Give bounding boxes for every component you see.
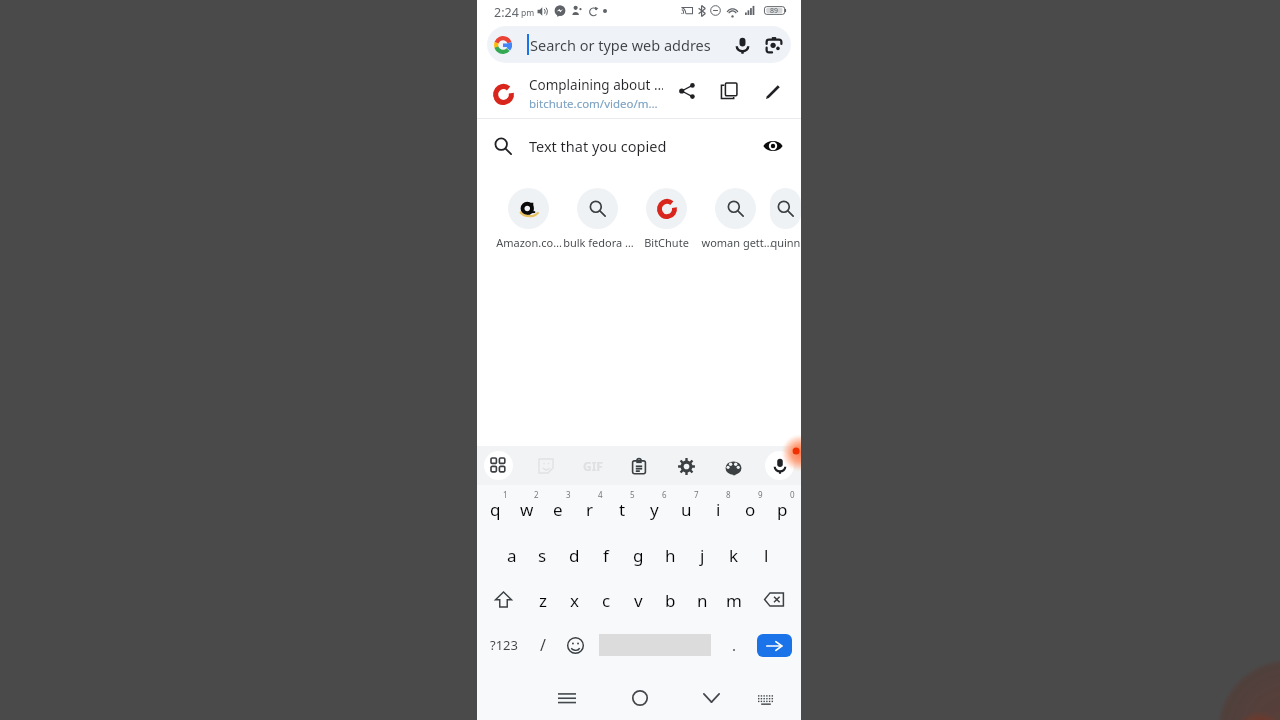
staticText: 3 xyxy=(566,489,571,500)
button[interactable]: k xyxy=(718,531,750,577)
button[interactable]: Hide keyboard xyxy=(689,676,733,720)
staticText: p xyxy=(777,498,788,521)
button[interactable]: Complaining about … xyxy=(477,66,801,118)
staticText: BitChute xyxy=(644,235,689,250)
button[interactable]: q xyxy=(480,485,511,531)
button[interactable]: woman gett… xyxy=(701,188,770,258)
staticText: d xyxy=(569,544,580,567)
staticText: e xyxy=(553,498,563,521)
button[interactable]: i xyxy=(702,485,734,531)
button[interactable]: Voice input xyxy=(765,451,794,480)
staticText: Text that you copied xyxy=(529,136,667,156)
button[interactable]: bulk fedora … xyxy=(563,188,632,258)
button[interactable]: ?123 xyxy=(480,622,527,668)
staticText: bitchute.com/video/m… xyxy=(529,96,658,112)
button[interactable]: Theme xyxy=(719,452,747,480)
button[interactable]: BitChute xyxy=(632,188,701,258)
staticText: GIF xyxy=(583,458,603,474)
button[interactable]: t xyxy=(606,485,638,531)
button[interactable]: Switch keyboard xyxy=(744,676,788,720)
button[interactable]: Shift xyxy=(480,577,527,622)
button[interactable]: Backspace xyxy=(750,577,798,622)
button[interactable]: Voice search xyxy=(726,29,758,61)
button[interactable]: h xyxy=(654,531,686,577)
button[interactable]: x xyxy=(558,577,590,622)
button[interactable]: v xyxy=(622,577,654,622)
button[interactable]: w xyxy=(511,485,542,531)
button[interactable]: Text that you copied xyxy=(477,119,801,173)
staticText: w xyxy=(520,498,534,521)
staticText: q xyxy=(490,498,501,521)
staticText: j xyxy=(700,544,705,567)
staticText: y xyxy=(650,498,659,521)
button[interactable]: . xyxy=(718,622,750,668)
button[interactable]: Copy xyxy=(712,75,746,109)
button[interactable]: n xyxy=(686,577,718,622)
button[interactable]: Clipboard xyxy=(625,452,653,480)
button[interactable]: Go xyxy=(757,634,792,657)
button[interactable]: Stickers xyxy=(532,452,560,480)
button[interactable]: Menu xyxy=(545,676,589,720)
button[interactable]: Home xyxy=(618,676,662,720)
button[interactable]: m xyxy=(718,577,750,622)
button[interactable]: Google Lens xyxy=(758,29,790,61)
button[interactable]: s xyxy=(527,531,558,577)
button[interactable]: l xyxy=(750,531,782,577)
staticText: . xyxy=(732,635,737,655)
staticText: s xyxy=(538,544,547,567)
button[interactable]: z xyxy=(527,577,558,622)
staticText: 9 xyxy=(758,489,763,500)
button[interactable]: f xyxy=(590,531,622,577)
staticText: woman gett… xyxy=(701,235,770,250)
staticText: bulk fedora … xyxy=(563,235,632,250)
staticText: f xyxy=(603,544,609,567)
button[interactable]: r xyxy=(574,485,606,531)
button[interactable]: o xyxy=(734,485,766,531)
staticText: r xyxy=(586,498,594,521)
button[interactable]: Search or type web addres xyxy=(487,26,791,63)
button[interactable]: c xyxy=(590,577,622,622)
button[interactable]: Emoji xyxy=(559,622,591,668)
staticText: pm xyxy=(521,7,535,19)
button[interactable]: quinne xyxy=(770,188,801,258)
button[interactable]: j xyxy=(686,531,718,577)
staticText: Search or type web addres xyxy=(530,35,711,55)
button[interactable]: Space xyxy=(591,622,718,668)
staticText: 0 xyxy=(790,489,795,500)
staticText: 2 xyxy=(534,489,539,500)
staticText: k xyxy=(729,544,739,567)
staticText: h xyxy=(665,544,676,567)
button[interactable]: Amazon.co… xyxy=(494,188,563,258)
button[interactable]: Edit xyxy=(756,75,790,109)
staticText: Amazon.co… xyxy=(496,235,562,250)
staticText: l xyxy=(764,544,769,567)
button[interactable]: y xyxy=(638,485,670,531)
staticText: Complaining about … xyxy=(529,76,663,94)
staticText: t xyxy=(619,498,626,521)
staticText: x xyxy=(570,589,579,612)
button[interactable]: Toolbar xyxy=(484,451,513,480)
button[interactable]: Show xyxy=(756,129,790,163)
staticText: g xyxy=(633,544,644,567)
staticText: 4 xyxy=(598,489,603,500)
button[interactable]: b xyxy=(654,577,686,622)
staticText: 8 xyxy=(726,489,731,500)
button[interactable]: u xyxy=(670,485,702,531)
button[interactable]: g xyxy=(622,531,654,577)
button[interactable]: a xyxy=(496,531,527,577)
staticText: o xyxy=(745,498,756,521)
staticText: u xyxy=(681,498,692,521)
staticText: 6 xyxy=(662,489,667,500)
staticText: z xyxy=(539,589,547,612)
button[interactable]: d xyxy=(558,531,590,577)
staticText: 7 xyxy=(694,489,699,500)
button[interactable]: Share xyxy=(670,75,704,109)
staticText: / xyxy=(540,634,546,656)
button[interactable]: GIF xyxy=(579,452,607,480)
staticText: n xyxy=(697,589,708,612)
button[interactable]: Settings xyxy=(672,452,700,480)
button[interactable]: / xyxy=(527,622,559,668)
button[interactable]: p xyxy=(766,485,798,531)
staticText: b xyxy=(665,589,676,612)
button[interactable]: e xyxy=(542,485,574,531)
